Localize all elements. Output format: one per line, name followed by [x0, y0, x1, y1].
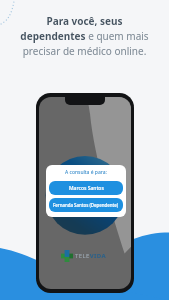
staticText: Para você, seus dependentes e quem mais … [20, 14, 149, 58]
button[interactable]: Marcos Santos [49, 181, 123, 195]
staticText: TELEVIDA [75, 252, 107, 260]
staticText: Marcos Santos [69, 185, 104, 192]
staticText: Fernanda Santos (Dependente) [53, 202, 119, 208]
button[interactable]: Fernanda Santos (Dependente) [49, 198, 123, 212]
staticText: A consulta é para: [65, 169, 107, 176]
